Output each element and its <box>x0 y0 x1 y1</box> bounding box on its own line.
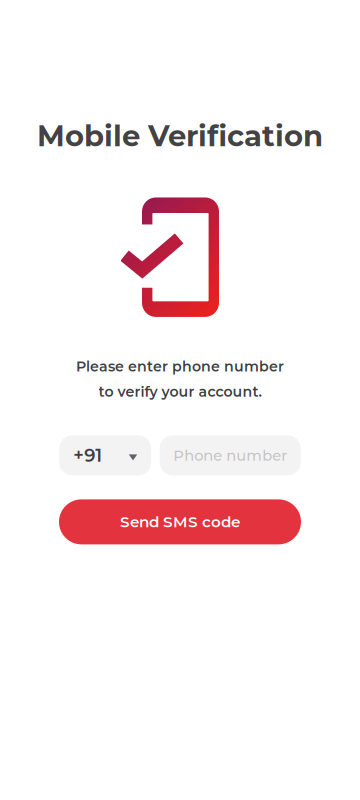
staticText: +91 <box>73 444 102 466</box>
button[interactable]: Send SMS code <box>59 499 301 544</box>
staticText: Mobile Verification <box>37 118 323 153</box>
staticText: Send SMS code <box>120 513 240 531</box>
staticText: to verify your account. <box>98 383 261 400</box>
button[interactable]: Phone number <box>160 435 301 475</box>
button[interactable]: +91 <box>59 435 151 475</box>
staticText: Phone number <box>173 446 287 464</box>
staticText: Please enter phone number <box>76 358 284 375</box>
